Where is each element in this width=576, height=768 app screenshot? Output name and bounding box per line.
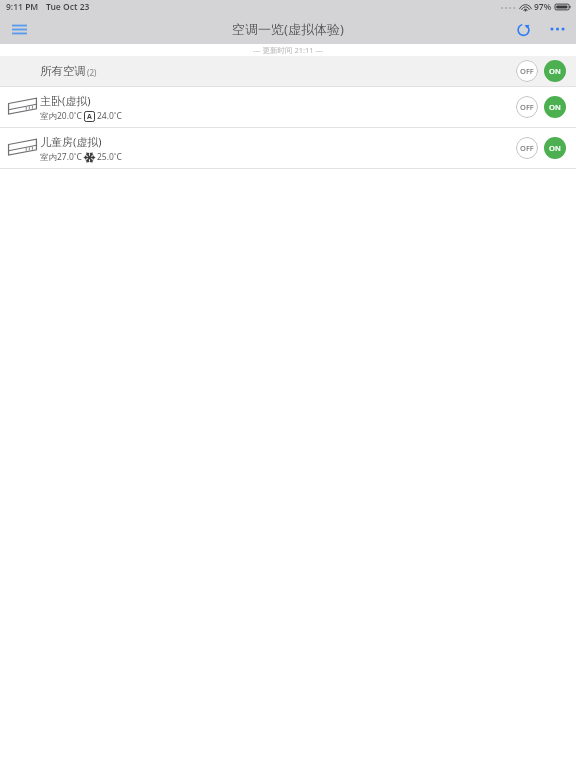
button[interactable]: OFF — [516, 96, 538, 118]
button[interactable]: More options — [544, 16, 570, 42]
button[interactable]: 儿童房(虚拟) — [0, 128, 576, 168]
staticText: ON — [549, 66, 561, 76]
staticText: 9:11 PM — [6, 1, 39, 13]
staticText: 25.0˚C — [97, 151, 122, 163]
staticText: 主卧(虚拟) — [40, 93, 91, 108]
staticText: 儿童房(虚拟) — [40, 134, 102, 149]
staticText: OFF — [520, 143, 534, 153]
staticText: (2) — [87, 67, 97, 78]
button[interactable]: ON — [544, 60, 566, 82]
staticText: 所有空调 — [40, 64, 86, 78]
button[interactable]: OFF — [516, 137, 538, 159]
button[interactable]: Refresh — [510, 16, 536, 42]
staticText: 空调一览(虚拟体验) — [232, 20, 344, 38]
staticText: 室内27.0˚C — [40, 151, 82, 163]
staticText: 97% — [534, 1, 552, 13]
staticText: --- 更新时间 21:11 --- — [253, 45, 323, 55]
button[interactable]: 主卧(虚拟) — [0, 87, 576, 127]
button[interactable]: ON — [544, 96, 566, 118]
button[interactable]: OFF — [516, 60, 538, 82]
staticText: ON — [549, 102, 561, 112]
staticText: A — [87, 112, 92, 122]
button[interactable]: Menu — [6, 16, 32, 42]
staticText: OFF — [520, 102, 534, 112]
staticText: Tue Oct 23 — [46, 1, 90, 13]
staticText: 24.0˚C — [97, 110, 122, 122]
staticText: ON — [549, 143, 561, 153]
staticText: 室内20.0˚C — [40, 110, 82, 122]
button[interactable]: ON — [544, 137, 566, 159]
staticText: OFF — [520, 66, 534, 76]
